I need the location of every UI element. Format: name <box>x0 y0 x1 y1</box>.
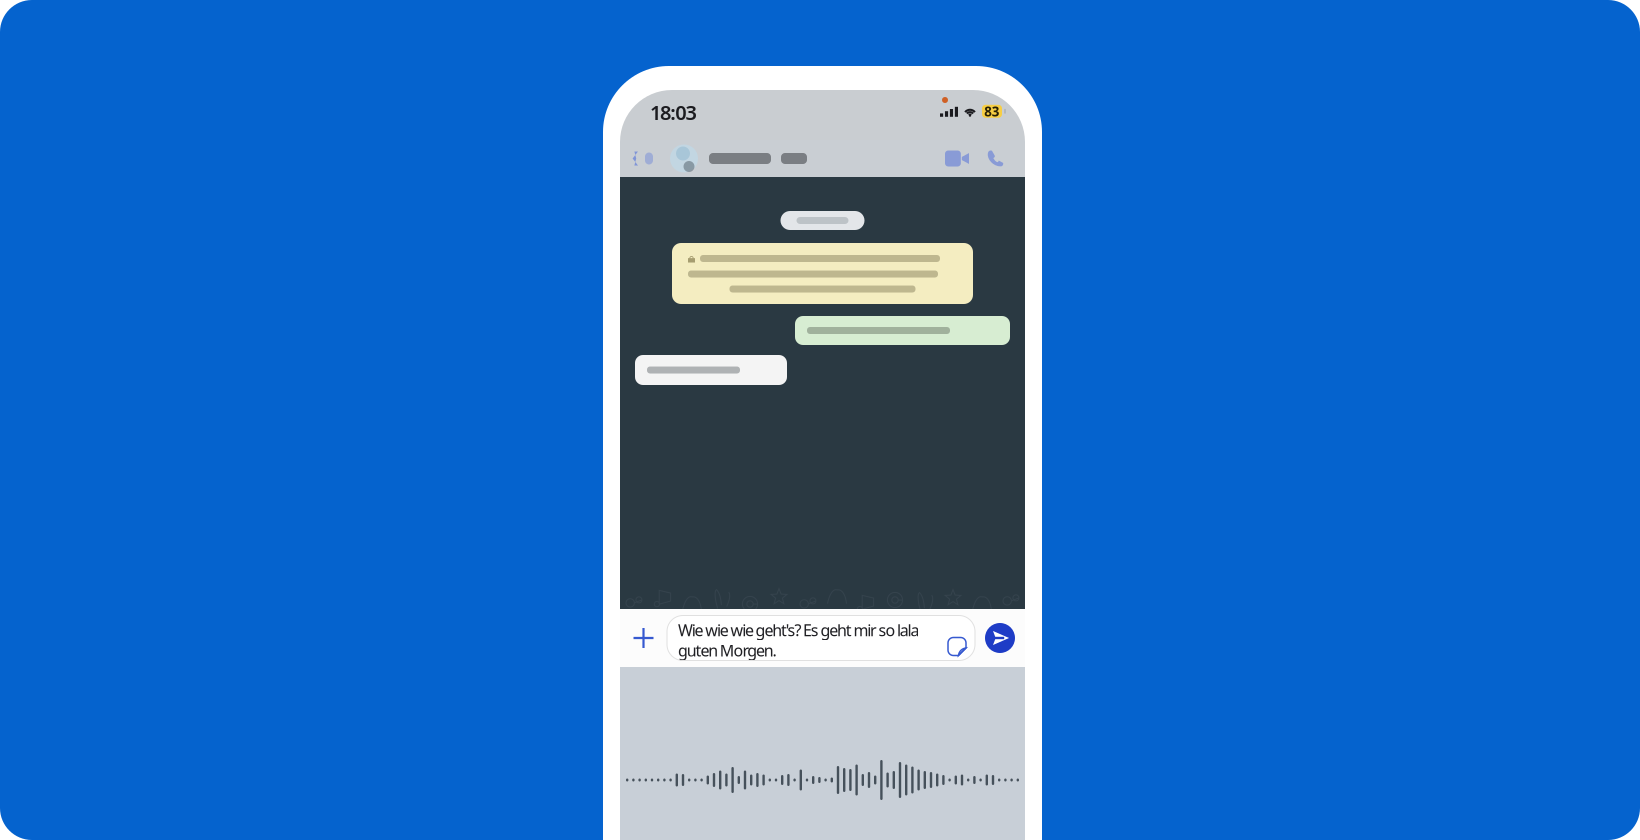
staticText: 83 <box>984 102 1000 120</box>
button[interactable]: Video call <box>937 141 977 175</box>
button[interactable]: Send <box>975 609 1025 667</box>
staticText: guten Morgen. <box>678 640 777 661</box>
staticText: 18:03 <box>650 99 696 126</box>
button[interactable]: Voice call <box>977 141 1013 175</box>
button[interactable]: Stickers <box>945 634 969 658</box>
button[interactable]: Back <box>630 141 670 175</box>
staticText: Wie wie wie geht's? Es geht mir so lala <box>678 619 919 641</box>
button[interactable]: Contact info <box>670 144 807 172</box>
button[interactable]: Attach <box>620 609 667 667</box>
